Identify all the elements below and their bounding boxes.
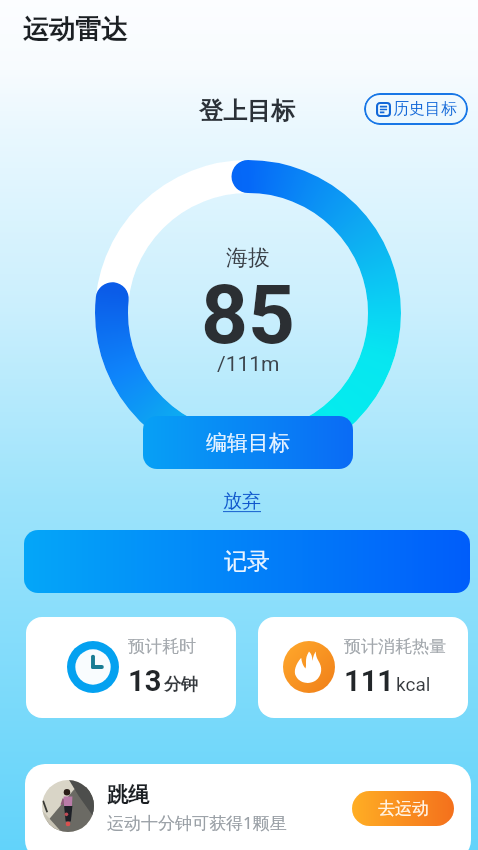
staticText: 记录 <box>224 547 270 576</box>
staticText: 运动十分钟可获得1颗星 <box>107 811 287 834</box>
staticText: /111m <box>217 352 280 377</box>
staticText: 历史目标 <box>393 99 457 119</box>
button[interactable]: 编辑目标 <box>143 416 353 469</box>
button[interactable]: 预计消耗热量 <box>258 617 468 718</box>
staticText: 预计耗时 <box>128 636 196 657</box>
staticText: 去运动 <box>378 798 429 819</box>
button[interactable]: 历史目标 <box>364 93 468 125</box>
staticText: 放弃 <box>223 489 261 513</box>
staticText: 预计消耗热量 <box>344 636 446 657</box>
staticText: 跳绳 <box>107 782 149 808</box>
staticText: 运动雷达 <box>23 13 127 46</box>
staticText: 海拔 <box>226 244 270 272</box>
staticText: kcal <box>396 673 431 695</box>
staticText: 分钟 <box>164 674 198 695</box>
staticText: 111 <box>344 664 394 698</box>
other: 历史目标 <box>376 102 391 117</box>
staticText: 编辑目标 <box>206 430 290 456</box>
staticText: 13 <box>128 664 162 698</box>
button[interactable]: 跳绳 <box>25 764 471 850</box>
button[interactable]: 放弃 <box>219 487 265 515</box>
button[interactable]: 预计耗时 <box>26 617 236 718</box>
staticText: 登上目标 <box>199 96 295 126</box>
button[interactable]: 去运动 <box>352 791 454 826</box>
button[interactable]: 记录 <box>24 530 470 593</box>
staticText: 85 <box>201 267 296 363</box>
